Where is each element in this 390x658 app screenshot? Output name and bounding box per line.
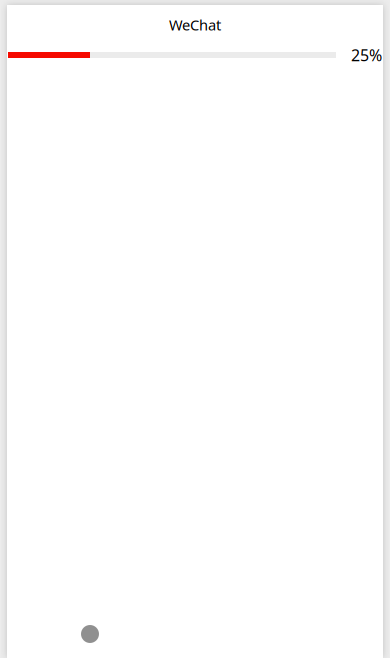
button[interactable]: WeChat — [169, 15, 221, 34]
button[interactable]: Loading — [81, 625, 99, 643]
staticText: 25% — [351, 44, 382, 66]
staticText: WeChat — [169, 15, 221, 34]
